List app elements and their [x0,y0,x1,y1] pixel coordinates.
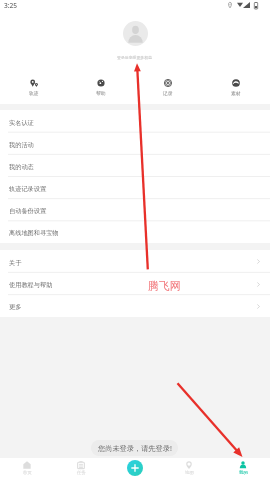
staticText: 记录 [163,90,173,96]
button[interactable]: 任务 [54,458,108,480]
staticText: 登录后享受更多权益 [117,55,153,60]
button[interactable]: 使用教程与帮助 [0,273,270,295]
button[interactable]: 轨迹记录设置 [0,177,270,199]
button[interactable]: Add [127,460,143,476]
button[interactable]: 关于 [0,250,270,273]
staticText: 轨迹 [29,90,39,96]
button[interactable]: 自动备份设置 [0,199,270,221]
staticText: 我的 [239,470,248,476]
button[interactable]: 我的活动 [0,133,270,155]
staticText: 关于 [9,259,22,267]
button[interactable]: 素材 [202,76,270,99]
staticText: 首页 [23,470,32,476]
button[interactable]: 地图 [162,458,216,480]
button[interactable]: Profile photo [123,21,148,46]
button[interactable]: 记录 [134,76,202,99]
staticText: 素材 [231,90,241,96]
staticText: 3:25 [4,1,18,10]
button[interactable]: 实名认证 [0,110,270,133]
staticText: 离线地图和寻宝物 [9,229,59,237]
staticText: 实名认证 [9,119,34,127]
staticText: 帮助 [96,90,106,96]
button[interactable]: 首页 [0,458,54,480]
button[interactable]: 登录后享受更多权益 [113,54,157,61]
button[interactable]: 我的 [216,458,270,480]
staticText: 自动备份设置 [9,207,47,215]
button[interactable]: 更多 [0,295,270,317]
staticText: 我的活动 [9,141,34,149]
button[interactable]: 我的动态 [0,155,270,177]
staticText: 更多 [9,303,22,311]
button[interactable]: 离线地图和寻宝物 [0,221,270,243]
staticText: 使用教程与帮助 [9,281,53,289]
staticText: 我的动态 [9,163,34,171]
button[interactable]: 轨迹 [0,76,67,99]
staticText: 腾飞网 [148,280,181,294]
button[interactable]: 帮助 [67,76,134,99]
staticText: 轨迹记录设置 [9,185,47,193]
staticText: 您尚未登录，请先登录! [98,443,172,453]
staticText: 地图 [185,470,194,476]
staticText: 任务 [77,470,86,476]
